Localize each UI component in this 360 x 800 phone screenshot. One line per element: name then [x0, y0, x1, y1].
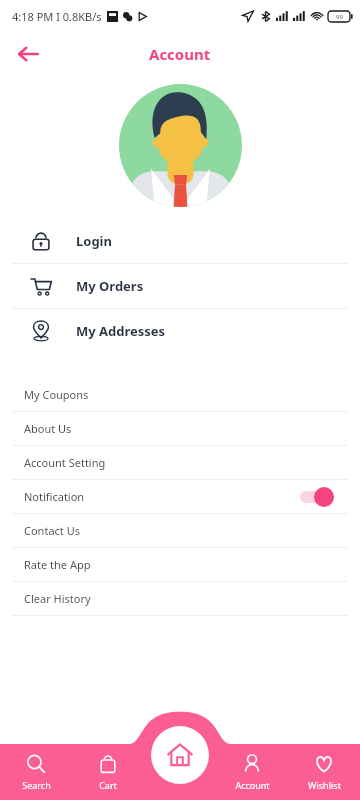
staticText: Cart: [99, 779, 117, 791]
staticText: My Orders: [76, 277, 144, 295]
staticText: My Addresses: [76, 322, 166, 340]
staticText: Login: [76, 232, 112, 250]
button[interactable]: Rate the App: [12, 548, 348, 581]
staticText: 4:18 PM I 0.8KB/s: [12, 9, 102, 24]
staticText: About Us: [24, 421, 72, 436]
button[interactable]: Clear History: [12, 582, 348, 615]
staticText: My Coupons: [24, 387, 89, 402]
other: Notification toggle: [298, 487, 334, 507]
staticText: Notification: [24, 489, 85, 504]
button[interactable]: About Us: [12, 412, 348, 445]
button[interactable]: Account: [216, 744, 288, 800]
button[interactable]: Wishlist: [288, 744, 360, 800]
button[interactable]: My Addresses: [12, 309, 348, 353]
button[interactable]: My Coupons: [12, 378, 348, 411]
button[interactable]: Back: [8, 34, 48, 74]
button[interactable]: Search: [0, 744, 72, 800]
button[interactable]: My Orders: [12, 264, 348, 308]
staticText: Clear History: [24, 591, 91, 606]
staticText: Account Setting: [24, 455, 106, 470]
staticText: Search: [22, 779, 51, 791]
staticText: 99: [336, 13, 343, 21]
staticText: Contact Us: [24, 523, 80, 538]
button[interactable]: Login: [12, 219, 348, 263]
button[interactable]: Notification: [12, 480, 348, 513]
staticText: Account: [149, 44, 211, 64]
staticText: Wishlist: [308, 779, 341, 791]
button[interactable]: Cart: [72, 744, 144, 800]
button[interactable]: Account Setting: [12, 446, 348, 479]
button[interactable]: Home: [151, 726, 209, 784]
button[interactable]: Contact Us: [12, 514, 348, 547]
staticText: Rate the App: [24, 557, 91, 572]
staticText: Account: [235, 779, 270, 791]
